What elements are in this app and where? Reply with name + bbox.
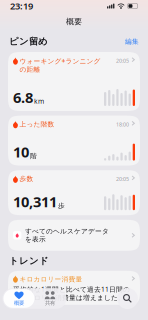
staticText: 編集 (125, 37, 139, 46)
button[interactable]: 上った階数 (8, 116, 140, 166)
button[interactable]: 共有 (34, 289, 65, 308)
staticText: 歩 (58, 202, 65, 210)
button[interactable]: 検索 (117, 288, 138, 309)
staticText: 10,311 (13, 192, 57, 211)
staticText: 10 (13, 142, 29, 162)
staticText: 20:05 (116, 57, 129, 64)
staticText: トレンド (9, 255, 49, 267)
staticText: 平均的な1週間と比べて過去11日間の キロカロリー消費量は増えました。 (13, 285, 130, 302)
staticText: 概要 (66, 17, 82, 26)
staticText: 上った階数 (19, 120, 54, 128)
staticText: キロカロリー消費量 (19, 275, 82, 283)
button[interactable]: キロカロリー消費量 (8, 271, 140, 305)
staticText: 共有 (45, 300, 55, 306)
staticText: 歩数 (19, 175, 33, 183)
staticText: すべてのヘルスケアデータ を表示 (25, 227, 109, 243)
staticText: 23:19 (10, 0, 33, 12)
staticText: 18:00 (116, 121, 129, 128)
staticText: ピン留め (9, 36, 48, 47)
staticText: km (34, 97, 44, 106)
button[interactable]: 概要 (3, 289, 34, 308)
button[interactable]: すべてのヘルスケアデータ を表示 (8, 220, 140, 251)
button[interactable]: 編集 (125, 37, 139, 46)
staticText: 階 (30, 152, 37, 160)
button[interactable]: 歩数 (8, 170, 140, 215)
staticText: 6.8 (13, 87, 33, 107)
staticText: ウォーキング+ランニング の距離 (19, 56, 100, 73)
staticText: 20:05 (116, 175, 129, 182)
button[interactable]: ウォーキング+ランニング の距離 (8, 52, 140, 111)
staticText: 概要 (14, 300, 24, 306)
